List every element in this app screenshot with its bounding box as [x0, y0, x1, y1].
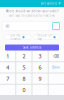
- button[interactable]: ⌫: [49, 51, 64, 61]
- button[interactable]: use my location: [4, 35, 31, 39]
- staticText: use my location: [10, 34, 21, 41]
- button[interactable]: 2: [16, 51, 31, 61]
- staticText: ⌫: [53, 54, 59, 58]
- button[interactable]: 5: [16, 62, 31, 72]
- button[interactable]: Focused field: [52, 23, 59, 30]
- button[interactable]: Done: [49, 62, 64, 72]
- staticText: 0: [22, 86, 25, 93]
- staticText: 8: [22, 75, 25, 82]
- button[interactable]: 8: [16, 73, 31, 84]
- staticText: 9: [39, 75, 42, 82]
- button[interactable]: 1: [0, 51, 15, 61]
- staticText: Edit address: [41, 2, 57, 5]
- button[interactable]: 3: [32, 51, 48, 61]
- button[interactable]: [32, 85, 48, 95]
- button[interactable]: 0: [16, 85, 31, 95]
- staticText: 7: [6, 75, 9, 82]
- staticText: +: [58, 0, 61, 7]
- button[interactable]: 9: [32, 73, 48, 84]
- staticText: we'll save this address for next time: [8, 14, 55, 17]
- button[interactable]: 7: [0, 73, 15, 84]
- staticText: 6: [39, 64, 42, 71]
- staticText: choose on map: [37, 34, 52, 41]
- button[interactable]: Save address: [5, 44, 59, 50]
- staticText: Where should we deliver your order?: [5, 9, 58, 13]
- staticText: 2: [22, 53, 25, 60]
- button[interactable]: 4: [0, 62, 15, 72]
- staticText: 4: [6, 64, 9, 71]
- staticText: Done: [52, 66, 60, 69]
- staticText: Save address: [23, 46, 41, 49]
- staticText: 1: [6, 53, 9, 60]
- button[interactable]: 6: [32, 62, 48, 72]
- button[interactable]: choose on map: [33, 35, 60, 39]
- staticText: 3: [39, 53, 42, 60]
- staticText: 5: [22, 64, 25, 71]
